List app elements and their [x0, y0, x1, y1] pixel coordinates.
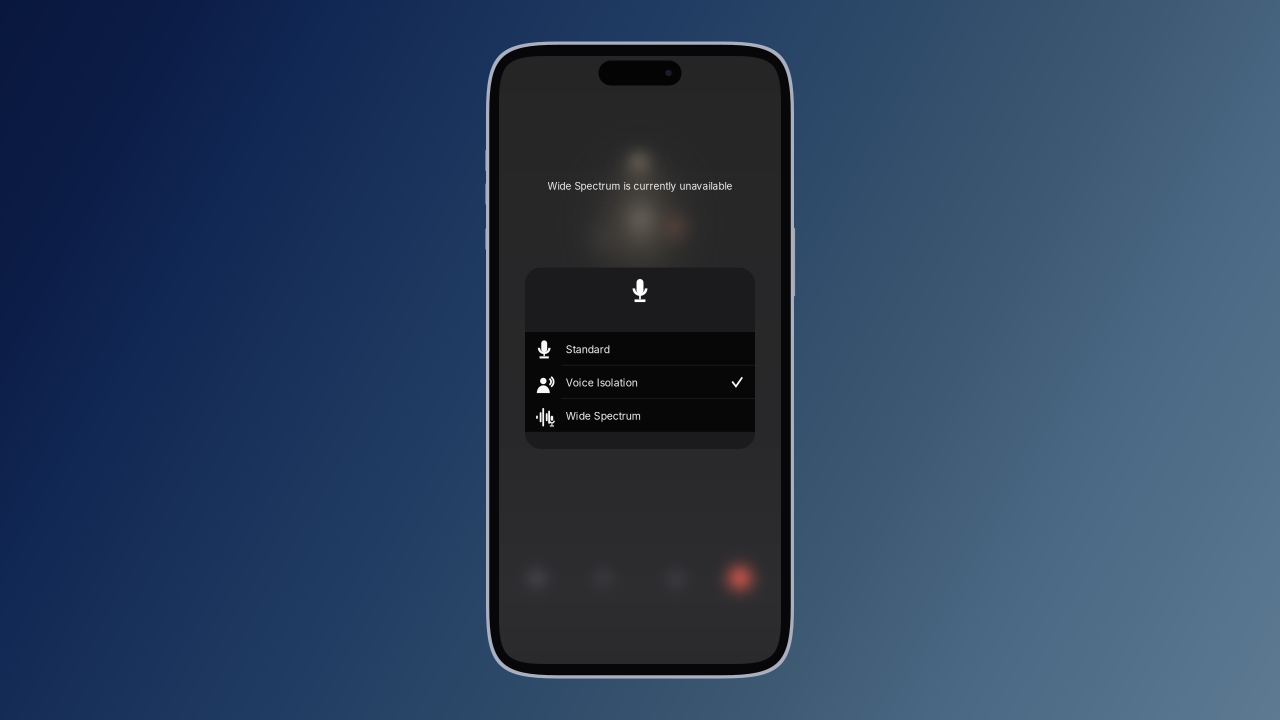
- button[interactable]: Voice Isolation: [525, 365, 755, 398]
- staticText: Voice Isolation: [566, 376, 638, 389]
- staticText: Wide Spectrum: [566, 410, 641, 422]
- button[interactable]: Wide Spectrum: [525, 398, 755, 432]
- staticText: Wide Spectrum is currently unavailable: [547, 180, 732, 192]
- staticText: Standard: [566, 343, 610, 356]
- button[interactable]: Standard: [525, 332, 755, 365]
